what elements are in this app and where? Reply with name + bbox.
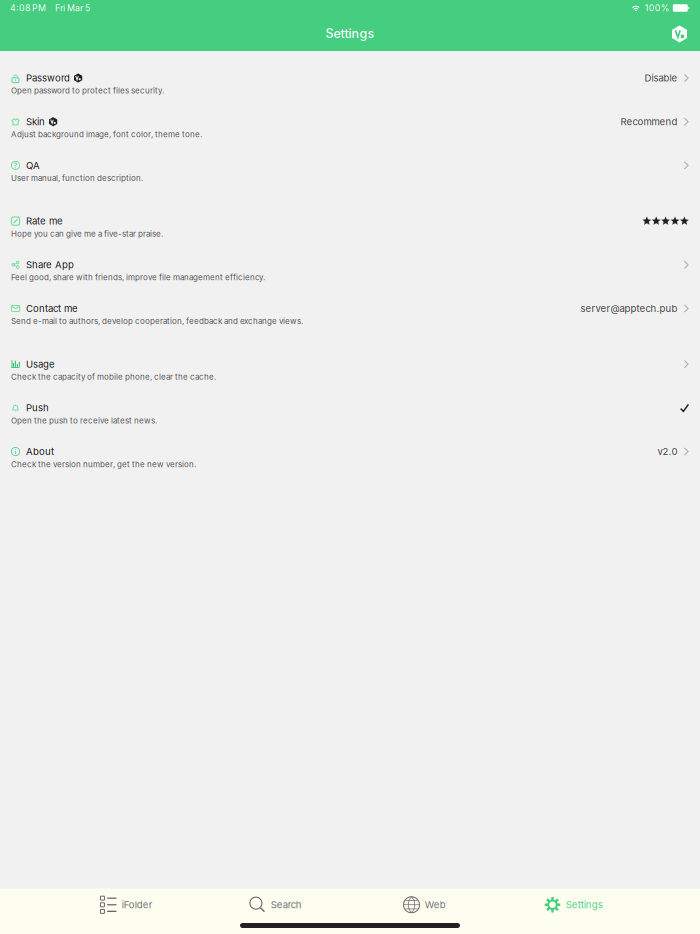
staticText: Settings bbox=[325, 26, 374, 41]
staticText: Skin bbox=[26, 116, 45, 127]
staticText: Fri Mar 5 bbox=[55, 3, 90, 13]
button[interactable]: Push bbox=[0, 392, 700, 436]
button[interactable]: Share App bbox=[0, 249, 700, 292]
staticText: About bbox=[26, 446, 54, 457]
button[interactable]: About bbox=[0, 436, 700, 479]
button[interactable]: Usage bbox=[0, 348, 700, 392]
button[interactable]: App info bbox=[672, 8, 700, 42]
button[interactable]: Settings bbox=[499, 893, 648, 916]
button[interactable]: Password bbox=[0, 62, 700, 106]
staticText: 100% bbox=[645, 3, 670, 13]
staticText: 4:08 PM bbox=[10, 3, 46, 13]
button[interactable]: Web bbox=[350, 893, 499, 916]
staticText: Open password to protect files security. bbox=[11, 86, 164, 95]
staticText: ? bbox=[13, 160, 17, 171]
staticText: server@apptech.pub bbox=[580, 303, 677, 314]
staticText: Recommend bbox=[620, 116, 677, 127]
staticText: Usage bbox=[26, 358, 55, 370]
button[interactable]: iFolder bbox=[52, 893, 201, 916]
staticText: Disable bbox=[644, 72, 677, 84]
staticText: Hope you can give me a five-star praise. bbox=[11, 229, 163, 239]
staticText: Share App bbox=[26, 259, 74, 271]
button[interactable]: Rate me bbox=[0, 205, 700, 249]
button[interactable]: Skin bbox=[0, 106, 700, 149]
staticText: QA bbox=[26, 160, 40, 171]
staticText: Rate me bbox=[26, 215, 63, 227]
staticText: Settings bbox=[566, 899, 603, 910]
staticText: Adjust background image, font color, the… bbox=[11, 129, 202, 139]
staticText: v2.0 bbox=[657, 446, 677, 457]
staticText: Contact me bbox=[26, 303, 78, 314]
button[interactable]: Contact me bbox=[0, 292, 700, 336]
staticText: Web bbox=[425, 899, 446, 910]
button[interactable]: ? bbox=[0, 149, 700, 193]
button[interactable]: Search bbox=[201, 893, 350, 916]
staticText: Search bbox=[271, 899, 302, 910]
staticText: iFolder bbox=[122, 899, 153, 910]
staticText: User manual, function description. bbox=[11, 173, 143, 183]
staticText: Push bbox=[26, 402, 49, 414]
staticText: Feel good, share with friends, improve f… bbox=[11, 273, 265, 282]
staticText: Password bbox=[26, 72, 70, 84]
staticText: Open the push to receive latest news. bbox=[11, 416, 157, 425]
staticText: Check the version number, get the new ve… bbox=[11, 459, 196, 469]
staticText: Send e-mail to authors, develop cooperat… bbox=[11, 316, 303, 326]
staticText: Check the capacity of mobile phone, clea… bbox=[11, 372, 216, 382]
